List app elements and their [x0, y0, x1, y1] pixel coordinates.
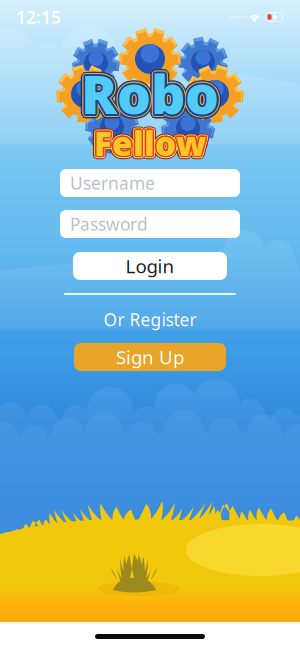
- staticText: Robo: [81, 54, 219, 124]
- staticText: Sign Up: [116, 345, 184, 369]
- staticText: Password: [70, 212, 148, 235]
- staticText: Fellow: [95, 120, 207, 164]
- staticText: Fellow: [93, 120, 205, 164]
- staticText: Robo: [81, 62, 219, 133]
- staticText: Robo: [81, 58, 219, 129]
- staticText: Robo: [80, 56, 218, 127]
- staticText: Fellow: [97, 122, 209, 167]
- staticText: Robo: [81, 60, 219, 131]
- staticText: Robo: [84, 56, 222, 127]
- staticText: Robo: [79, 57, 217, 128]
- staticText: Fellow: [97, 121, 209, 165]
- staticText: Robo: [82, 60, 220, 130]
- staticText: Robo: [81, 61, 219, 132]
- staticText: Robo: [83, 59, 221, 130]
- staticText: Or Register: [103, 308, 196, 331]
- staticText: Fellow: [95, 119, 207, 163]
- staticText: Fellow: [95, 122, 207, 166]
- staticText: Fellow: [93, 120, 205, 164]
- staticText: Robo: [84, 58, 222, 129]
- staticText: Robo: [77, 60, 215, 131]
- staticText: Fellow: [93, 121, 205, 165]
- staticText: Fellow: [95, 121, 207, 166]
- staticText: Username: [70, 171, 155, 194]
- button[interactable]: Sign Up: [74, 343, 226, 371]
- staticText: Fellow: [93, 119, 205, 163]
- staticText: Robo: [81, 55, 219, 126]
- staticText: Fellow: [94, 117, 206, 162]
- staticText: Fellow: [96, 122, 208, 166]
- staticText: Robo: [79, 62, 217, 133]
- staticText: Fellow: [92, 118, 204, 162]
- staticText: Fellow: [92, 122, 204, 166]
- staticText: Robo: [82, 61, 220, 131]
- staticText: Fellow: [96, 124, 208, 168]
- staticText: Robo: [83, 57, 221, 128]
- staticText: Robo: [80, 60, 218, 130]
- staticText: Robo: [78, 56, 216, 127]
- staticText: Robo: [79, 59, 217, 130]
- button[interactable]: Password: [60, 210, 240, 238]
- staticText: Robo: [83, 54, 221, 125]
- staticText: Fellow: [94, 121, 206, 165]
- staticText: Fellow: [94, 122, 206, 166]
- staticText: Fellow: [93, 121, 205, 166]
- staticText: 12:15: [16, 5, 61, 28]
- staticText: Fellow: [92, 120, 204, 164]
- staticText: Fellow: [94, 124, 206, 168]
- button[interactable]: Login: [73, 252, 227, 280]
- staticText: Fellow: [96, 118, 208, 162]
- staticText: Robo: [81, 56, 219, 127]
- staticText: Robo: [77, 58, 215, 129]
- staticText: Fellow: [94, 119, 206, 164]
- staticText: Robo: [85, 58, 223, 129]
- staticText: Robo: [83, 62, 221, 133]
- staticText: Fellow: [94, 118, 206, 163]
- staticText: Robo: [79, 55, 217, 126]
- staticText: Fellow: [97, 119, 209, 163]
- staticText: Fellow: [91, 122, 203, 167]
- staticText: Fellow: [93, 122, 205, 166]
- staticText: Robo: [79, 58, 217, 129]
- staticText: Robo: [78, 59, 216, 130]
- staticText: Robo: [83, 58, 221, 129]
- staticText: Robo: [77, 56, 215, 127]
- staticText: Robo: [84, 59, 222, 130]
- staticText: Fellow: [96, 121, 208, 165]
- staticText: Fellow: [95, 121, 207, 165]
- staticText: Fellow: [92, 124, 204, 168]
- staticText: Fellow: [93, 123, 205, 167]
- staticText: Fellow: [95, 123, 207, 167]
- staticText: Robo: [79, 54, 217, 125]
- staticText: Robo: [85, 60, 223, 131]
- staticText: Fellow: [94, 123, 206, 167]
- staticText: Fellow: [91, 119, 203, 163]
- staticText: Login: [125, 254, 174, 278]
- button[interactable]: Username: [60, 169, 240, 197]
- staticText: Robo: [85, 56, 223, 127]
- staticText: Robo: [79, 61, 217, 131]
- staticText: Fellow: [91, 121, 203, 165]
- staticText: Robo: [78, 58, 216, 129]
- staticText: Fellow: [96, 120, 208, 164]
- staticText: Robo: [82, 55, 220, 126]
- staticText: Fellow: [92, 121, 204, 165]
- staticText: Robo: [82, 56, 220, 127]
- staticText: Fellow: [95, 120, 207, 164]
